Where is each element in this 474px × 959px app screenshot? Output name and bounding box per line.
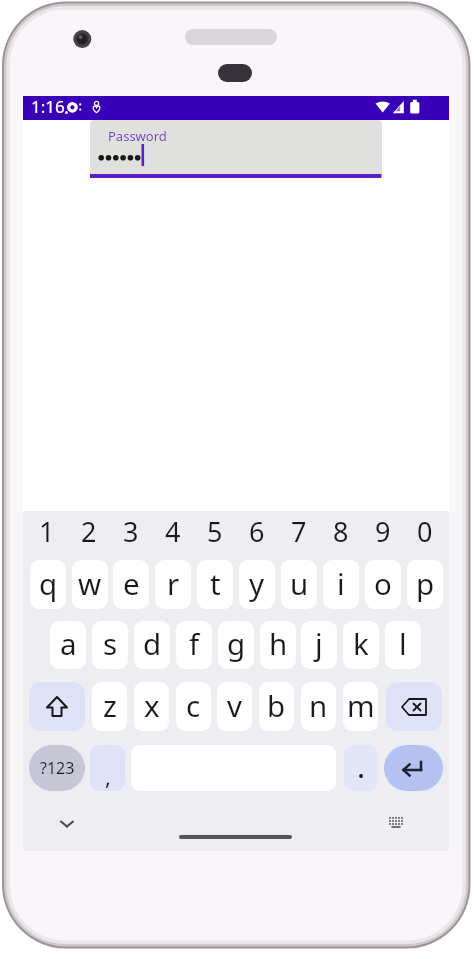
staticText: f	[189, 623, 200, 663]
staticText: i	[337, 563, 345, 603]
button[interactable]: ?123	[29, 745, 85, 791]
button[interactable]	[179, 835, 292, 839]
staticText: c	[186, 685, 201, 725]
button[interactable]	[344, 745, 378, 791]
button[interactable]	[55, 812, 79, 836]
staticText: s	[103, 623, 118, 663]
staticText: e	[123, 563, 140, 603]
button[interactable]: q	[30, 560, 66, 609]
staticText: y	[249, 563, 265, 603]
button[interactable]: s	[92, 621, 128, 669]
button[interactable]: t	[197, 560, 233, 609]
staticText: k	[353, 623, 369, 663]
button[interactable]: x	[134, 682, 169, 731]
button[interactable]: 4	[152, 510, 194, 552]
staticText: 7	[291, 513, 307, 550]
button[interactable]: n	[301, 682, 336, 731]
button[interactable]: r	[155, 560, 191, 609]
staticText: g	[227, 623, 246, 663]
button[interactable]: k	[343, 621, 379, 669]
button[interactable]: 2	[68, 510, 110, 552]
staticText: j	[315, 623, 323, 663]
staticText: 1:16	[31, 95, 65, 118]
button[interactable]: z	[92, 682, 127, 731]
button[interactable]: 8	[320, 510, 362, 552]
staticText: z	[103, 685, 117, 725]
button[interactable]: y	[239, 560, 275, 609]
staticText: o	[374, 563, 392, 603]
button[interactable]	[384, 745, 443, 791]
button[interactable]: f	[176, 621, 212, 669]
staticText: 5	[207, 513, 223, 550]
staticText: 2	[81, 513, 97, 550]
button[interactable]: l	[385, 621, 421, 669]
staticText: 3	[123, 513, 139, 550]
staticText: ,	[105, 761, 111, 791]
staticText: t	[210, 563, 221, 603]
button[interactable]	[384, 810, 408, 834]
staticText: n	[309, 685, 328, 725]
staticText: 1	[39, 513, 55, 550]
button[interactable]	[386, 682, 442, 731]
staticText: q	[39, 563, 58, 603]
button[interactable]: e	[113, 560, 149, 609]
button[interactable]	[29, 682, 85, 731]
staticText: 4	[165, 513, 181, 550]
staticText: 8	[333, 513, 349, 550]
button[interactable]: a	[50, 621, 86, 669]
staticText: l	[399, 623, 407, 663]
button[interactable]: b	[259, 682, 294, 731]
staticText: a	[60, 623, 77, 663]
staticText: m	[347, 685, 375, 725]
button[interactable]: p	[407, 560, 443, 609]
button[interactable]: ,	[90, 745, 125, 791]
staticText: 6	[249, 513, 265, 550]
staticText: 0	[417, 513, 433, 550]
staticText: h	[269, 623, 288, 663]
button[interactable]: v	[217, 682, 252, 731]
button[interactable]: g	[218, 621, 254, 669]
button[interactable]: 6	[236, 510, 278, 552]
staticText: p	[416, 563, 435, 603]
button[interactable]: c	[176, 682, 211, 731]
staticText: Password	[108, 127, 167, 145]
button[interactable]: w	[72, 560, 108, 609]
button[interactable]: 3	[110, 510, 152, 552]
button[interactable]: Password	[90, 120, 382, 178]
button[interactable]: j	[301, 621, 337, 669]
button[interactable]: u	[281, 560, 317, 609]
staticText: v	[227, 685, 242, 725]
staticText: x	[144, 685, 160, 725]
button[interactable]: d	[134, 621, 170, 669]
button[interactable]: o	[365, 560, 401, 609]
staticText: r	[167, 563, 180, 603]
button[interactable]: 7	[278, 510, 320, 552]
button[interactable]: i	[323, 560, 359, 609]
button[interactable]: 1	[26, 510, 68, 552]
button[interactable]: 5	[194, 510, 236, 552]
button[interactable]: m	[343, 682, 378, 731]
staticText: ?123	[40, 757, 75, 779]
staticText: b	[267, 685, 286, 725]
staticText: w	[78, 563, 102, 603]
staticText: u	[290, 563, 309, 603]
button[interactable]: 9	[362, 510, 404, 552]
button[interactable]: 0	[404, 510, 446, 552]
staticText: 9	[375, 513, 391, 550]
button[interactable]: h	[260, 621, 296, 669]
staticText: d	[143, 623, 162, 663]
